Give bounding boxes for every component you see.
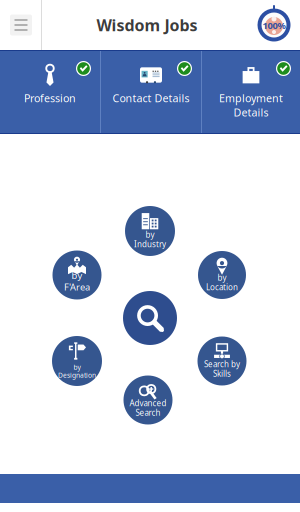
staticText: Designation xyxy=(58,371,96,379)
staticText: Search xyxy=(135,407,160,418)
staticText: Details xyxy=(233,105,268,119)
button[interactable]: by xyxy=(125,206,175,256)
staticText: Location xyxy=(206,282,238,292)
staticText: 100% xyxy=(262,19,285,32)
staticText: Search by xyxy=(204,359,240,369)
button[interactable]: Search xyxy=(123,291,177,345)
staticText: Profession xyxy=(24,91,76,105)
button[interactable]: Contact Details xyxy=(101,51,201,133)
staticText: Employment xyxy=(219,91,283,105)
button[interactable]: Advanced xyxy=(123,375,172,424)
staticText: Wisdom Jobs xyxy=(96,14,197,36)
staticText: by xyxy=(145,229,154,240)
button[interactable]: by xyxy=(198,251,246,299)
staticText: Industry xyxy=(134,239,166,249)
staticText: Contact Details xyxy=(112,91,189,105)
button[interactable]: by xyxy=(52,336,102,386)
button[interactable]: Profession xyxy=(0,51,100,133)
button[interactable]: by xyxy=(52,250,101,299)
button[interactable]: Search by xyxy=(197,336,246,385)
staticText: Advanced xyxy=(129,398,166,408)
button[interactable]: Menu xyxy=(0,0,42,50)
staticText: by xyxy=(73,363,80,372)
staticText: F'Area xyxy=(64,281,90,293)
button[interactable]: Profile completeness 100 percent xyxy=(252,0,300,50)
staticText: Skills xyxy=(213,368,231,379)
staticText: by xyxy=(71,269,82,282)
staticText: by xyxy=(217,272,226,283)
button[interactable]: Employment xyxy=(202,51,300,133)
